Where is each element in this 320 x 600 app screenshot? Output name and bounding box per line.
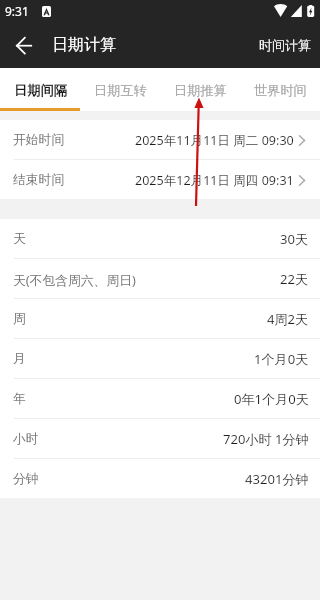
staticText: 天 bbox=[13, 231, 26, 247]
staticText: 开始时间 bbox=[13, 132, 65, 148]
staticText: 2025年12月11日 周四 09:31 bbox=[135, 172, 294, 189]
staticText: 日期计算 bbox=[52, 35, 116, 55]
button[interactable]: 年 bbox=[0, 379, 320, 419]
button[interactable]: 月 bbox=[0, 339, 320, 379]
staticText: 周 bbox=[13, 311, 26, 327]
staticText: 22天 bbox=[280, 270, 309, 288]
button[interactable]: 小时 bbox=[0, 419, 320, 459]
button[interactable]: 开始时间 bbox=[0, 120, 320, 160]
button[interactable]: 天 bbox=[0, 219, 320, 259]
button[interactable]: 时间计算 bbox=[250, 25, 320, 65]
staticText: 30天 bbox=[280, 230, 309, 248]
staticText: 结束时间 bbox=[13, 172, 65, 188]
button[interactable]: 分钟 bbox=[0, 459, 320, 499]
button[interactable]: Back bbox=[0, 22, 46, 68]
staticText: 0年1个月0天 bbox=[234, 390, 309, 408]
staticText: 1个月0天 bbox=[254, 350, 309, 368]
staticText: 720小时 1分钟 bbox=[223, 430, 309, 448]
staticText: 小时 bbox=[13, 431, 39, 447]
button[interactable]: 日期互转 bbox=[80, 68, 160, 111]
staticText: 分钟 bbox=[13, 471, 39, 487]
staticText: 时间计算 bbox=[259, 37, 311, 53]
staticText: 月 bbox=[13, 351, 26, 367]
staticText: 日期互转 bbox=[94, 82, 147, 99]
button[interactable]: 天(不包含周六、周日) bbox=[0, 259, 320, 299]
staticText: 43201分钟 bbox=[245, 470, 309, 488]
button[interactable]: 日期推算 bbox=[160, 68, 240, 111]
button[interactable]: 周 bbox=[0, 299, 320, 339]
staticText: 4周2天 bbox=[267, 310, 309, 328]
staticText: 2025年11月11日 周二 09:30 bbox=[135, 132, 294, 149]
staticText: 日期间隔 bbox=[14, 82, 67, 99]
staticText: 天(不包含周六、周日) bbox=[13, 271, 136, 288]
staticText: 年 bbox=[13, 391, 26, 407]
staticText: 日期推算 bbox=[174, 82, 227, 99]
button[interactable]: 结束时间 bbox=[0, 160, 320, 200]
staticText: 世界时间 bbox=[254, 82, 307, 99]
button[interactable]: 世界时间 bbox=[240, 68, 320, 111]
button[interactable]: 日期间隔 bbox=[0, 68, 80, 111]
staticText: 9:31 bbox=[5, 3, 29, 19]
